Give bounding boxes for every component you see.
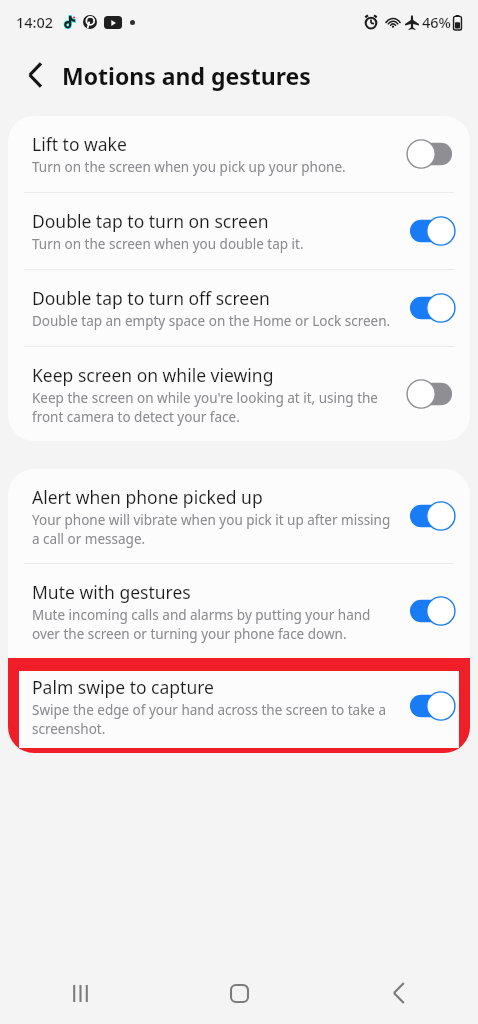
- button[interactable]: Alert when phone picked up: [8, 469, 470, 563]
- staticText: Turn on the screen when you double tap i…: [32, 235, 304, 253]
- button[interactable]: On: [404, 292, 458, 324]
- staticText: 46%: [422, 12, 451, 32]
- staticText: Alert when phone picked up: [32, 485, 263, 509]
- staticText: Mute incoming calls and alarms by puttin…: [32, 606, 396, 642]
- button[interactable]: Double tap to turn on screen: [8, 193, 470, 269]
- staticText: Mute with gestures: [32, 580, 191, 604]
- button[interactable]: Mute with gestures: [8, 564, 470, 658]
- staticText: Lift to wake: [32, 132, 127, 156]
- button[interactable]: Keep screen on while viewing: [8, 347, 470, 441]
- button[interactable]: On: [404, 595, 458, 627]
- button[interactable]: Back: [319, 962, 478, 1024]
- staticText: Turn on the screen when you pick up your…: [32, 158, 346, 176]
- button[interactable]: Home: [160, 962, 319, 1024]
- staticText: Swipe the edge of your hand across the s…: [32, 701, 396, 737]
- staticText: Double tap to turn off screen: [32, 286, 270, 310]
- staticText: Palm swipe to capture: [32, 675, 214, 699]
- staticText: Your phone will vibrate when you pick it…: [32, 511, 396, 547]
- button[interactable]: Off: [404, 378, 458, 410]
- button[interactable]: On: [404, 500, 458, 532]
- staticText: Double tap an empty space on the Home or…: [32, 312, 391, 330]
- button[interactable]: Double tap to turn off screen: [8, 270, 470, 346]
- staticText: 14:02: [16, 12, 54, 32]
- staticText: Double tap to turn on screen: [32, 209, 269, 233]
- staticText: Motions and gestures: [62, 60, 311, 91]
- button[interactable]: On: [404, 690, 458, 722]
- button[interactable]: Recent apps: [0, 962, 160, 1024]
- button[interactable]: Back: [12, 52, 58, 98]
- button[interactable]: Off: [404, 138, 458, 170]
- staticText: Keep the screen on while you're looking …: [32, 389, 396, 425]
- button[interactable]: Lift to wake: [8, 116, 470, 192]
- button[interactable]: On: [404, 215, 458, 247]
- button[interactable]: Palm swipe to capture: [8, 659, 470, 753]
- staticText: Keep screen on while viewing: [32, 363, 274, 387]
